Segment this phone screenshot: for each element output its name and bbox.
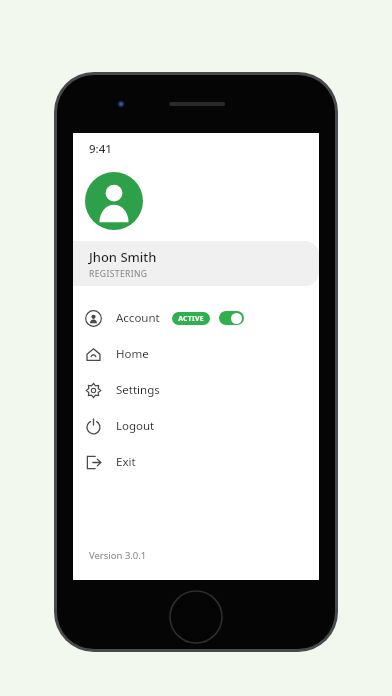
staticText: 9:41 xyxy=(89,141,112,157)
button[interactable]: Jhon Smith xyxy=(73,241,319,286)
button[interactable]: ACTIVE xyxy=(172,312,210,325)
staticText: Jhon Smith xyxy=(89,248,157,266)
staticText: REGISTERING xyxy=(89,268,148,280)
button[interactable]: Logout xyxy=(73,408,319,444)
staticText: Settings xyxy=(116,382,160,398)
staticText: Home xyxy=(116,346,149,362)
staticText: ACTIVE xyxy=(178,314,204,323)
button[interactable]: Profile avatar xyxy=(85,172,143,230)
button[interactable]: Account xyxy=(73,300,319,336)
button[interactable]: Exit xyxy=(73,444,319,480)
button[interactable]: Settings xyxy=(73,372,319,408)
button[interactable]: Account active toggle xyxy=(219,311,244,325)
staticText: Exit xyxy=(116,454,136,470)
staticText: Version 3.0.1 xyxy=(89,549,147,562)
staticText: Account xyxy=(116,310,160,326)
button[interactable]: Home xyxy=(73,336,319,372)
staticText: Logout xyxy=(116,418,155,434)
